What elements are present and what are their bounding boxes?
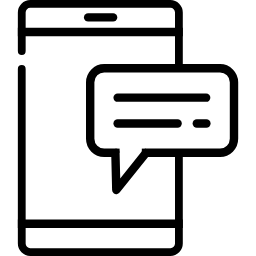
other: Phone with message bubble icon <box>0 0 256 256</box>
